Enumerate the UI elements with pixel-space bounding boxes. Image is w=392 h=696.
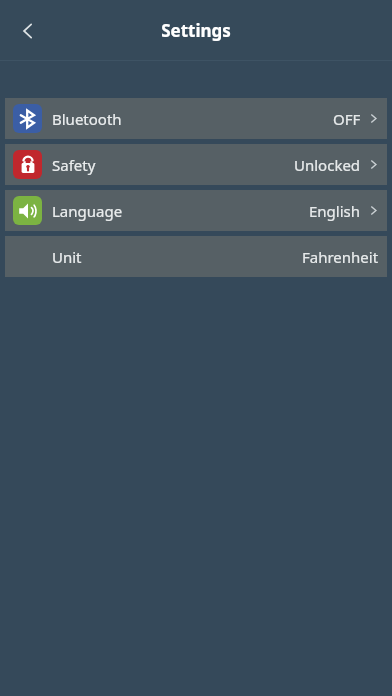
staticText: Unlocked <box>294 155 361 175</box>
button[interactable]: Language <box>5 190 387 231</box>
staticText: Settings <box>0 19 392 42</box>
button[interactable]: Safety <box>5 144 387 185</box>
button[interactable]: Unit <box>5 236 387 277</box>
staticText: Safety <box>52 155 96 175</box>
staticText: English <box>309 201 361 221</box>
button[interactable]: Back <box>6 9 50 53</box>
staticText: Bluetooth <box>52 109 122 129</box>
staticText: OFF <box>333 109 361 129</box>
staticText: Language <box>52 201 123 221</box>
staticText: Fahrenheit <box>302 247 379 267</box>
staticText: Unit <box>52 247 82 267</box>
button[interactable]: Bluetooth <box>5 98 387 139</box>
